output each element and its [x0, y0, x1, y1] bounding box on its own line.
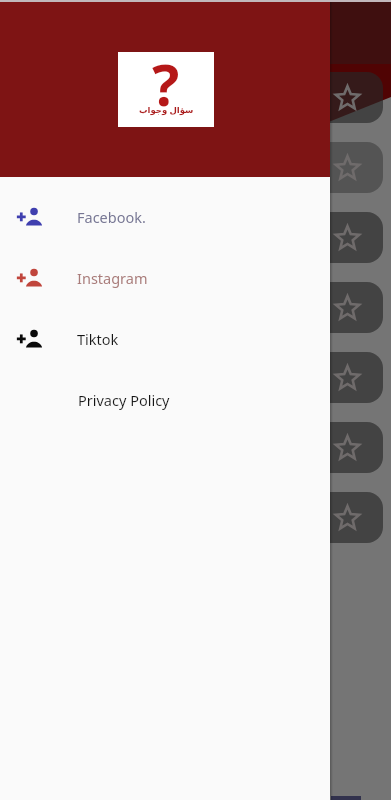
button[interactable]: Question 5 — [8, 352, 383, 403]
staticText: Privacy Policy — [78, 390, 170, 410]
staticText: Instagram — [77, 268, 148, 288]
button[interactable]: Favourite — [330, 291, 364, 325]
button[interactable]: Privacy Policy — [0, 369, 330, 430]
button[interactable]: Question 2 — [8, 142, 383, 193]
staticText: Facebook. — [77, 207, 146, 227]
button[interactable]: Favourite — [330, 151, 364, 185]
staticText: ? — [152, 45, 180, 120]
button[interactable]: Facebook. — [0, 186, 330, 247]
staticText: سؤال وجواب — [139, 104, 194, 116]
button[interactable]: Instagram — [0, 247, 330, 308]
button[interactable]: Question 7 — [8, 492, 383, 543]
button[interactable]: Question 6 — [8, 422, 383, 473]
button[interactable]: Question 4 — [8, 282, 383, 333]
button[interactable]: Favourite — [330, 221, 364, 255]
button[interactable]: Favourite — [330, 361, 364, 395]
button[interactable]: Favourite — [330, 431, 364, 465]
button[interactable]: Question 1 — [8, 72, 383, 123]
button[interactable]: Favourite — [330, 501, 364, 535]
button[interactable]: Question 3 — [8, 212, 383, 263]
button[interactable]: App logo — [118, 52, 214, 127]
button[interactable]: Tiktok — [0, 308, 330, 369]
button[interactable]: Favourite — [330, 81, 364, 115]
button[interactable]: Close navigation drawer — [0, 0, 391, 800]
staticText: Tiktok — [77, 329, 119, 349]
